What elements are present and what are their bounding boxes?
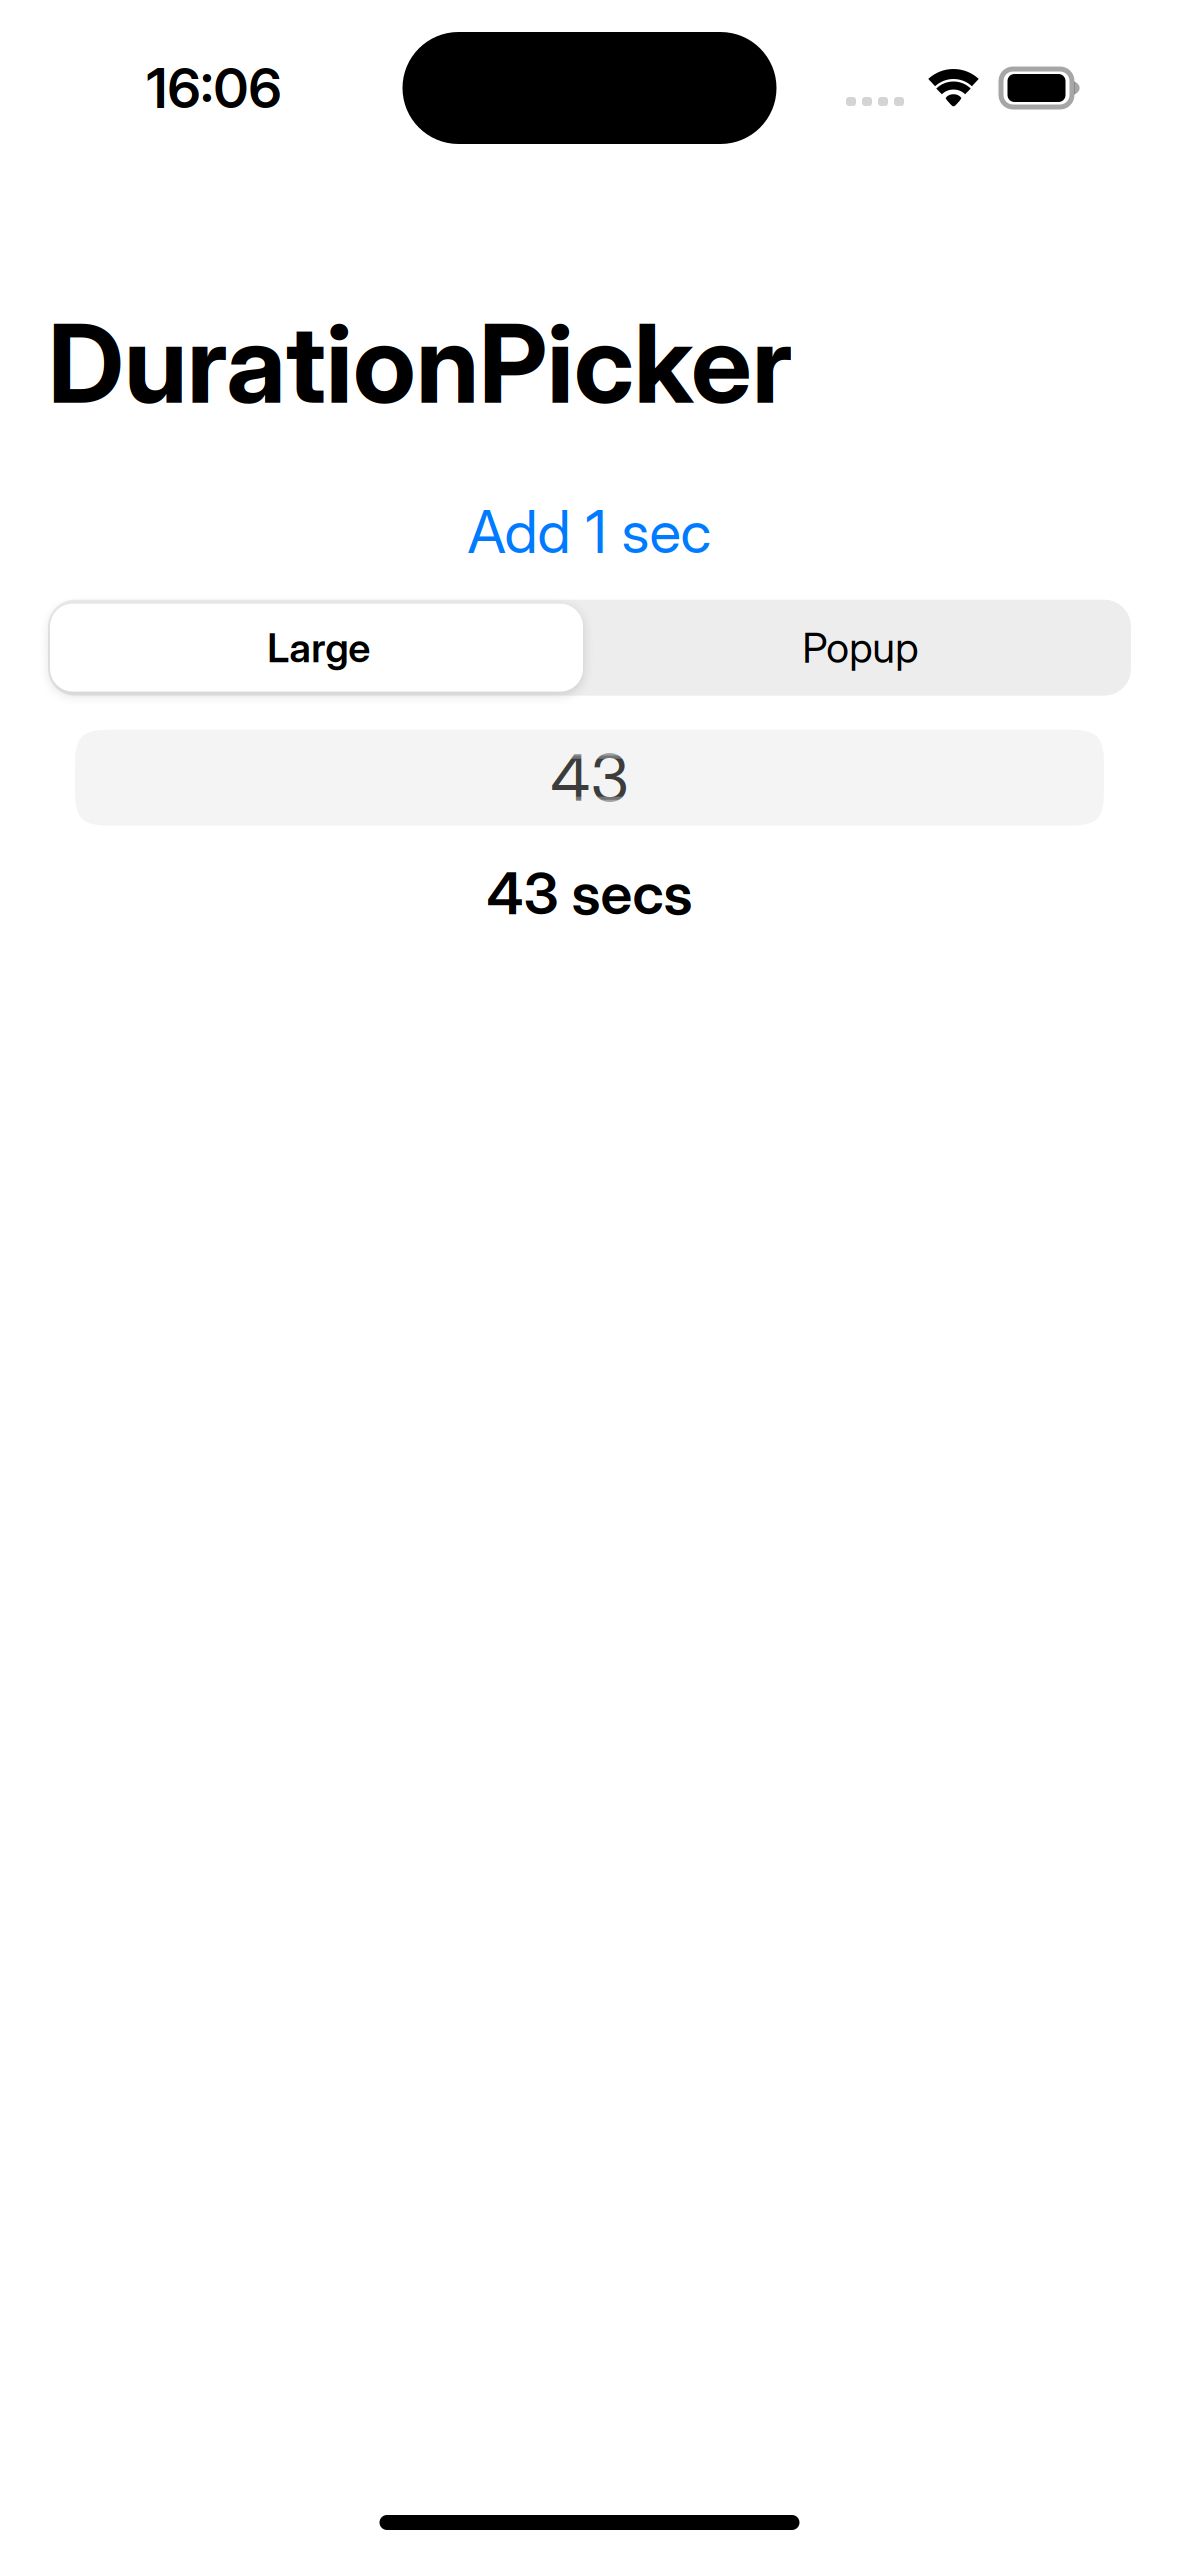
button[interactable]: 43: [75, 730, 1104, 826]
staticText: 16:06: [146, 55, 281, 121]
staticText: 43 secs: [486, 859, 692, 928]
staticText: Popup: [802, 623, 918, 673]
staticText: Add 1 sec: [467, 496, 711, 567]
button[interactable]: Large: [48, 600, 589, 696]
staticText: 43: [550, 739, 628, 816]
button[interactable]: Popup: [589, 600, 1131, 696]
staticText: Large: [267, 623, 370, 672]
button[interactable]: Add 1 sec: [465, 501, 713, 563]
staticText: DurationPicker: [48, 298, 792, 429]
